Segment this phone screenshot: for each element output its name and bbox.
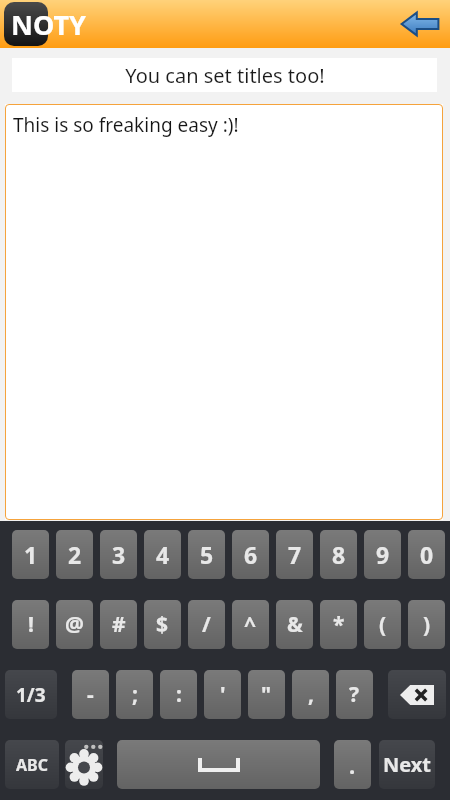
staticText: / — [202, 610, 211, 639]
staticText: 3 — [112, 539, 126, 570]
staticText: ; — [132, 680, 138, 709]
staticText: 1 — [24, 539, 38, 570]
staticText: & — [287, 610, 303, 639]
button[interactable]: Back — [398, 6, 442, 42]
button[interactable]: / — [188, 600, 225, 649]
button[interactable]: . — [334, 740, 371, 789]
button[interactable]: @ — [56, 600, 93, 649]
button[interactable]: $ — [144, 600, 181, 649]
staticText: : — [176, 680, 182, 709]
button[interactable]: 7 — [276, 530, 313, 579]
button[interactable]: " — [248, 670, 285, 719]
button[interactable]: & — [276, 600, 313, 649]
button[interactable]: Next — [379, 740, 435, 789]
button[interactable]: # — [100, 600, 137, 649]
staticText: - — [87, 680, 94, 709]
staticText: This is so freaking easy :)! — [13, 112, 239, 138]
staticText: " — [261, 680, 272, 709]
button[interactable]: : — [160, 670, 197, 719]
button[interactable]: This is so freaking easy :)! — [5, 104, 443, 520]
button[interactable]: - — [72, 670, 109, 719]
staticText: ( — [379, 610, 387, 639]
button[interactable]: 4 — [144, 530, 181, 579]
staticText: , — [308, 680, 314, 709]
staticText: . — [349, 750, 356, 780]
staticText: 9 — [376, 539, 390, 570]
button[interactable]: 2 — [56, 530, 93, 579]
button[interactable]: 1/3 — [5, 670, 57, 719]
button[interactable]: ! — [12, 600, 49, 649]
staticText: ^ — [244, 610, 257, 639]
button[interactable]: You can set titles too! — [12, 58, 437, 92]
button[interactable]: 0 — [408, 530, 445, 579]
button[interactable]: 3 — [100, 530, 137, 579]
staticText: 8 — [332, 539, 346, 570]
button[interactable]: Keyboard settings — [65, 740, 103, 789]
button[interactable]: ' — [204, 670, 241, 719]
staticText: 1/3 — [16, 682, 46, 708]
staticText: NOTY — [11, 6, 86, 43]
button[interactable] — [4, 2, 48, 46]
staticText: You can set titles too! — [125, 62, 325, 89]
staticText: @ — [65, 610, 84, 639]
button[interactable]: ? — [336, 670, 373, 719]
button[interactable]: 9 — [364, 530, 401, 579]
button[interactable]: ABC — [5, 740, 59, 789]
staticText: ! — [28, 610, 34, 639]
button[interactable]: ^ — [232, 600, 269, 649]
staticText: $ — [156, 610, 169, 639]
staticText: * — [333, 610, 345, 639]
button[interactable]: 6 — [232, 530, 269, 579]
button[interactable]: , — [292, 670, 329, 719]
button[interactable]: 8 — [320, 530, 357, 579]
button[interactable]: ; — [116, 670, 153, 719]
staticText: 4 — [156, 539, 170, 570]
button[interactable]: Space — [117, 740, 320, 789]
staticText: 5 — [200, 539, 214, 570]
button[interactable]: ) — [408, 600, 445, 649]
button[interactable]: 1 — [12, 530, 49, 579]
staticText: 6 — [244, 539, 258, 570]
staticText: 7 — [288, 539, 302, 570]
button[interactable]: ( — [364, 600, 401, 649]
button[interactable]: 5 — [188, 530, 225, 579]
staticText: ABC — [16, 754, 48, 776]
staticText: 0 — [420, 539, 434, 570]
button[interactable]: Backspace — [388, 670, 446, 719]
staticText: ) — [423, 610, 431, 639]
staticText: ? — [349, 680, 360, 709]
staticText: 2 — [68, 539, 82, 570]
staticText: Next — [383, 751, 432, 778]
staticText: ' — [220, 680, 226, 709]
staticText: # — [112, 610, 126, 639]
button[interactable]: * — [320, 600, 357, 649]
